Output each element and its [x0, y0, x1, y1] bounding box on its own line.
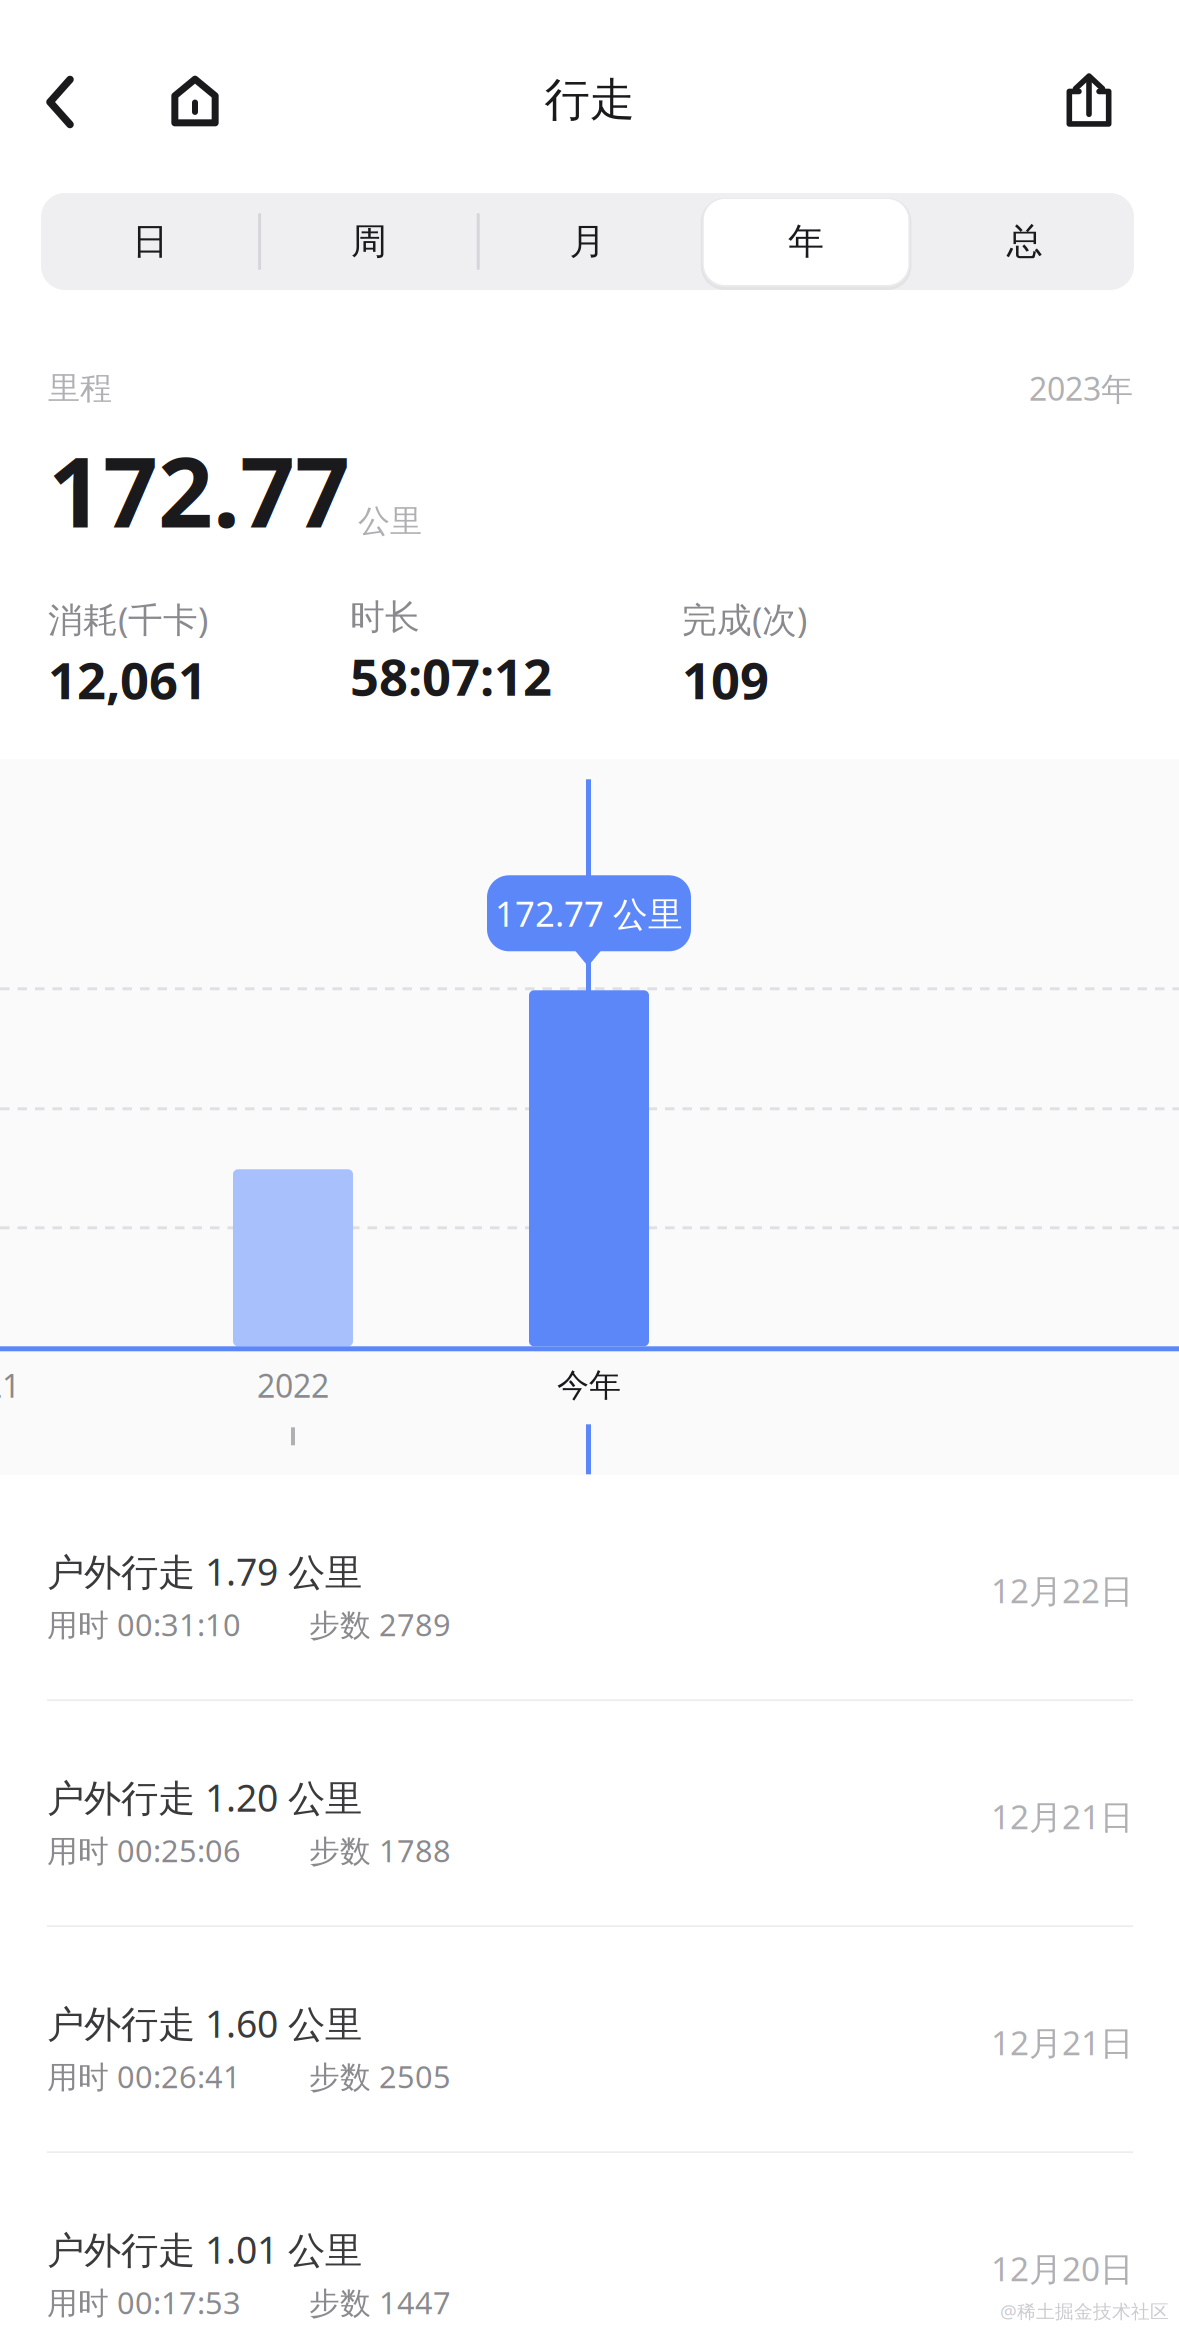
- staticText: 12月20日: [991, 2246, 1133, 2290]
- staticText: 户外行走 1.20 公里: [47, 1772, 362, 1822]
- staticText: 时长: [350, 596, 420, 639]
- button[interactable]: 周: [260, 193, 478, 290]
- staticText: 12,061: [48, 646, 207, 713]
- staticText: 年: [788, 219, 824, 264]
- staticText: 消耗(千卡): [48, 596, 208, 642]
- staticText: 周: [351, 219, 387, 264]
- button[interactable]: Home: [147, 53, 243, 149]
- button[interactable]: 月: [478, 193, 697, 290]
- staticText: 2022: [257, 1364, 329, 1407]
- button[interactable]: 年: [697, 193, 915, 290]
- staticText: 用时 00:17:53: [47, 2282, 241, 2323]
- button[interactable]: 户外行走 1.60 公里: [0, 1927, 1179, 2151]
- staticText: 日: [132, 219, 168, 264]
- staticText: 户外行走 1.01 公里: [47, 2224, 362, 2274]
- button[interactable]: 户外行走 1.20 公里: [0, 1701, 1179, 1925]
- staticText: 步数 2505: [309, 2056, 451, 2097]
- staticText: 公里: [358, 502, 422, 541]
- staticText: 今年: [557, 1366, 621, 1405]
- staticText: 58:07:12: [350, 643, 552, 710]
- staticText: 完成(次): [682, 596, 807, 642]
- staticText: 行走: [544, 72, 634, 128]
- button[interactable]: 总: [915, 193, 1134, 290]
- staticText: 步数 1447: [309, 2282, 451, 2323]
- staticText: 109: [682, 646, 769, 713]
- button[interactable]: 日: [41, 193, 260, 290]
- staticText: 21: [0, 1364, 20, 1407]
- staticText: 用时 00:26:41: [47, 2056, 241, 2097]
- staticText: 2023年: [1029, 367, 1133, 409]
- staticText: 户外行走 1.60 公里: [47, 1998, 362, 2048]
- button[interactable]: 户外行走 1.79 公里: [0, 1475, 1179, 1699]
- button[interactable]: Back: [12, 54, 108, 150]
- staticText: 172.77 公里: [495, 890, 683, 936]
- staticText: 月: [569, 219, 605, 264]
- staticText: 步数 2789: [309, 1604, 451, 1645]
- staticText: 12月21日: [991, 1794, 1133, 1838]
- staticText: 里程: [48, 369, 112, 408]
- button[interactable]: Share: [1041, 52, 1137, 148]
- staticText: 步数 1788: [309, 1830, 451, 1871]
- staticText: 用时 00:31:10: [47, 1604, 241, 1645]
- staticText: @稀土掘金技术社区: [1000, 2299, 1169, 2323]
- staticText: 总: [1007, 219, 1043, 264]
- staticText: 户外行走 1.79 公里: [47, 1546, 362, 1596]
- staticText: 172.77: [48, 426, 350, 554]
- staticText: 12月21日: [991, 2020, 1133, 2064]
- button[interactable]: 户外行走 1.01 公里: [0, 2153, 1179, 2330]
- staticText: 用时 00:25:06: [47, 1830, 241, 1871]
- staticText: 12月22日: [991, 1568, 1133, 1612]
